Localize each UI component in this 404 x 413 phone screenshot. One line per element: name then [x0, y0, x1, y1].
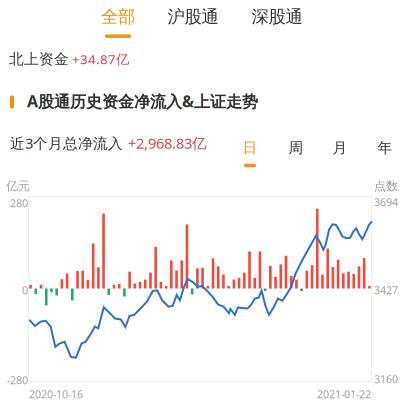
- staticText: 深股通: [251, 6, 302, 27]
- staticText: 年: [377, 139, 392, 157]
- staticText: 2021-01-22: [317, 387, 371, 401]
- staticText: +2,968.83亿: [128, 133, 207, 153]
- button[interactable]: 深股通: [246, 3, 308, 41]
- button[interactable]: 全部: [87, 3, 149, 41]
- staticText: 全部: [101, 6, 135, 27]
- staticText: 亿元: [6, 179, 30, 193]
- staticText: 280: [10, 196, 28, 210]
- staticText: 沪股通: [167, 6, 218, 27]
- staticText: 日: [242, 139, 257, 157]
- staticText: 周: [288, 139, 303, 157]
- staticText: 北上资金: [9, 50, 69, 68]
- staticText: 3694: [374, 195, 398, 209]
- staticText: A股通历史资金净流入&上证走势: [27, 90, 258, 112]
- button[interactable]: 周: [279, 135, 313, 171]
- button[interactable]: 日: [233, 135, 267, 171]
- staticText: 月: [332, 139, 347, 157]
- staticText: -280: [7, 373, 28, 387]
- staticText: 3427: [374, 283, 398, 297]
- staticText: 点数: [374, 179, 398, 193]
- button[interactable]: 年: [368, 135, 402, 171]
- button[interactable]: 沪股通: [162, 3, 224, 41]
- staticText: 0: [22, 283, 28, 297]
- button[interactable]: 月: [323, 135, 357, 171]
- staticText: 近3个月总净流入: [10, 133, 123, 153]
- staticText: 3160: [374, 372, 398, 386]
- staticText: +34.87亿: [72, 50, 129, 68]
- staticText: 2020-10-16: [29, 387, 83, 401]
